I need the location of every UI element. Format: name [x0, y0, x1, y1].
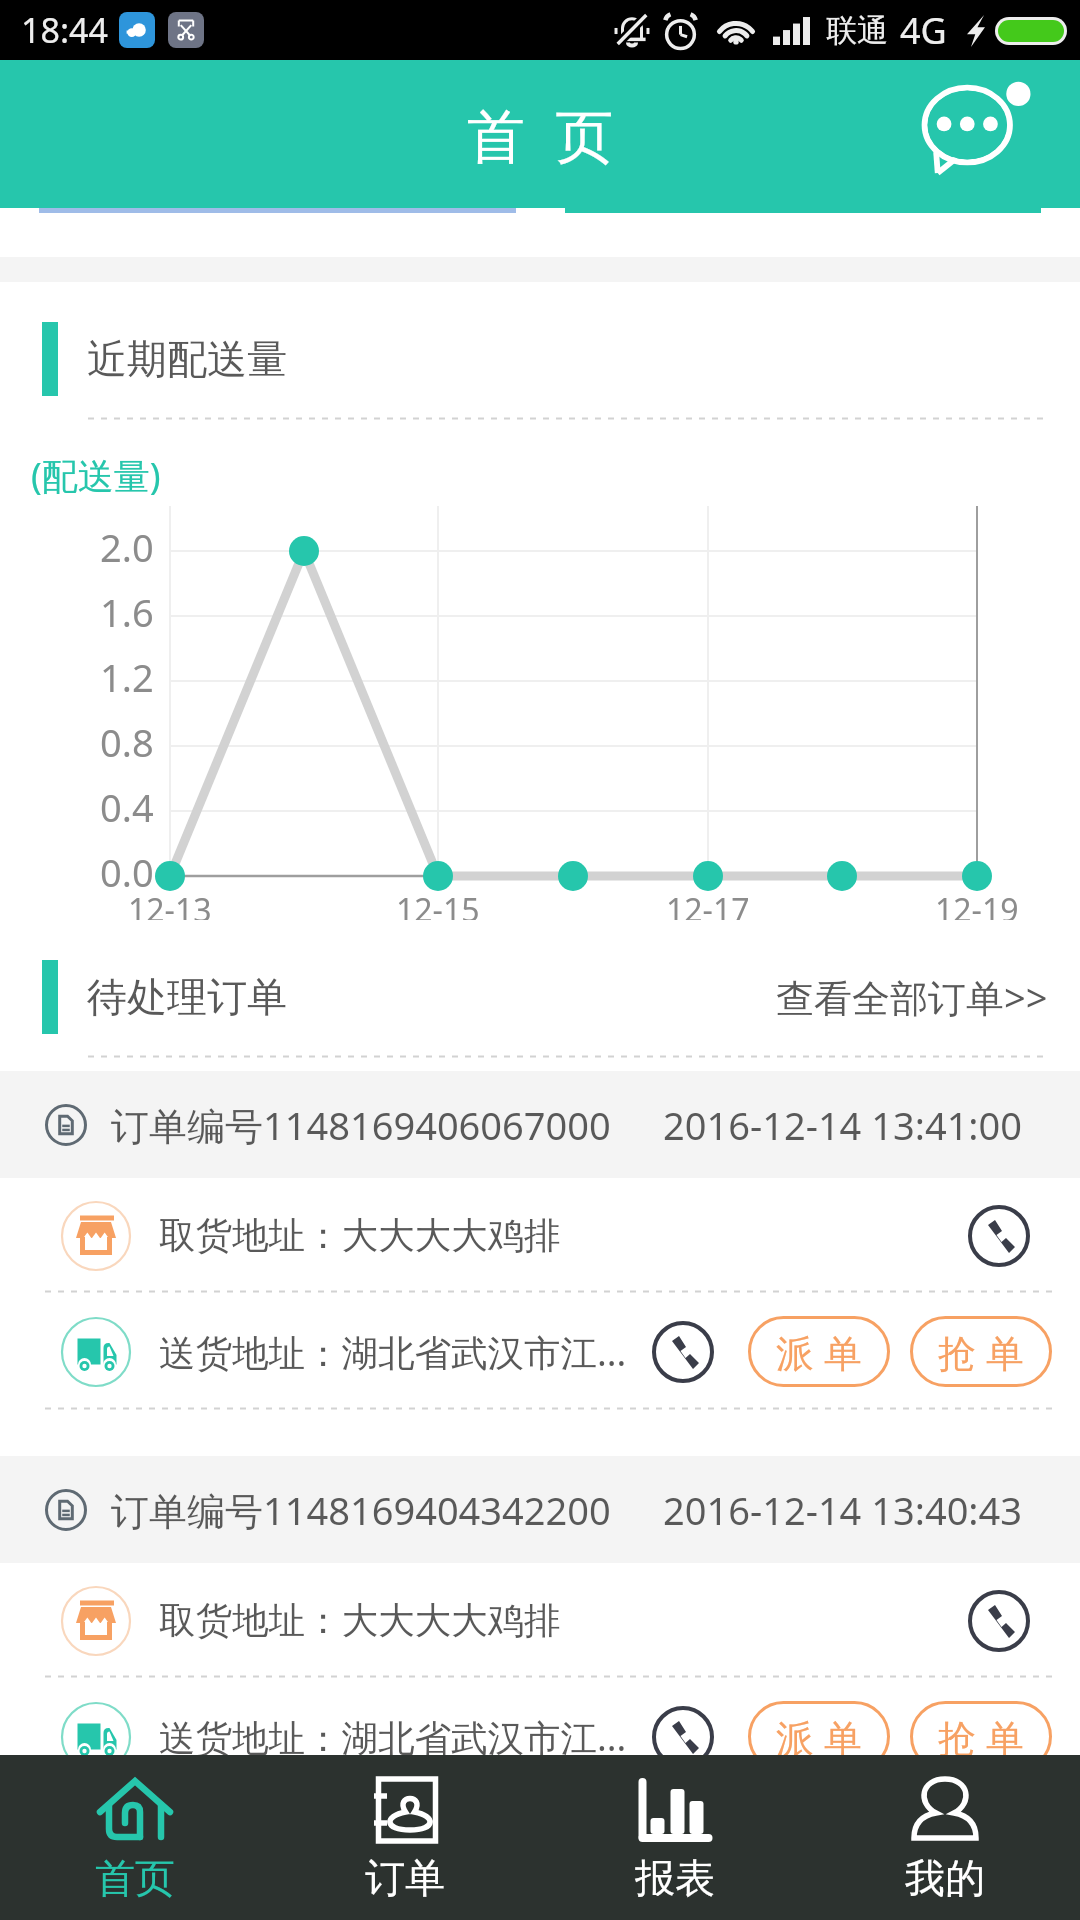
button[interactable]: 派 单 [748, 1701, 890, 1772]
button[interactable]: 取货地址：大大大大鸡排 [0, 1178, 1080, 1293]
button[interactable]: 取货地址：大大大大鸡排 [0, 1563, 1080, 1678]
button[interactable]: 报表 [540, 1755, 810, 1920]
button[interactable]: 查看全部订单>> [774, 963, 1050, 1031]
button[interactable]: Call [968, 1590, 1030, 1652]
button[interactable]: Call [652, 1321, 714, 1383]
staticText: 订单 [365, 1853, 445, 1903]
button[interactable]: Messages [914, 76, 1030, 192]
staticText: 2016-12-14 13:41:00 [663, 1099, 1023, 1151]
staticText: 4G [900, 6, 947, 55]
button[interactable]: 订单编号1148169404342200 [0, 1456, 1080, 1563]
button[interactable]: 首页 [0, 1755, 270, 1920]
staticText: 首 页 [467, 95, 614, 174]
staticText: 联通 [826, 11, 888, 50]
staticText: 订单编号1148169404342200 [111, 1484, 611, 1536]
staticText: 派 单 [776, 1326, 862, 1378]
staticText: 派 单 [776, 1711, 862, 1763]
staticText: 我的 [905, 1853, 985, 1903]
button[interactable]: 订单编号1148169406067000 [0, 1071, 1080, 1178]
staticText: 订单编号1148169406067000 [111, 1099, 611, 1151]
staticText: 近期配送量 [87, 334, 287, 384]
button[interactable]: 订单 [270, 1755, 540, 1920]
button[interactable]: 我的 [810, 1755, 1080, 1920]
staticText: 抢 单 [938, 1326, 1024, 1378]
staticText: 18:44 [21, 7, 108, 53]
staticText: 送货地址：湖北省武汉市江... [159, 1327, 627, 1377]
staticText: 首页 [95, 1853, 175, 1903]
staticText: 取货地址：大大大大鸡排 [159, 1598, 561, 1644]
staticText: 送货地址：湖北省武汉市江... [159, 1712, 627, 1762]
staticText: 抢 单 [938, 1711, 1024, 1763]
staticText: (配送量) [31, 451, 161, 500]
button[interactable]: 抢 单 [910, 1701, 1052, 1772]
staticText: 报表 [635, 1853, 715, 1903]
button[interactable]: 抢 单 [910, 1316, 1052, 1387]
staticText: 待处理订单 [87, 972, 287, 1022]
staticText: 2016-12-14 13:40:43 [663, 1484, 1023, 1536]
staticText: 取货地址：大大大大鸡排 [159, 1213, 561, 1259]
button[interactable]: Call [652, 1706, 714, 1768]
staticText: 查看全部订单>> [776, 971, 1048, 1023]
button[interactable]: 派 单 [748, 1316, 890, 1387]
button[interactable]: Call [968, 1205, 1030, 1267]
